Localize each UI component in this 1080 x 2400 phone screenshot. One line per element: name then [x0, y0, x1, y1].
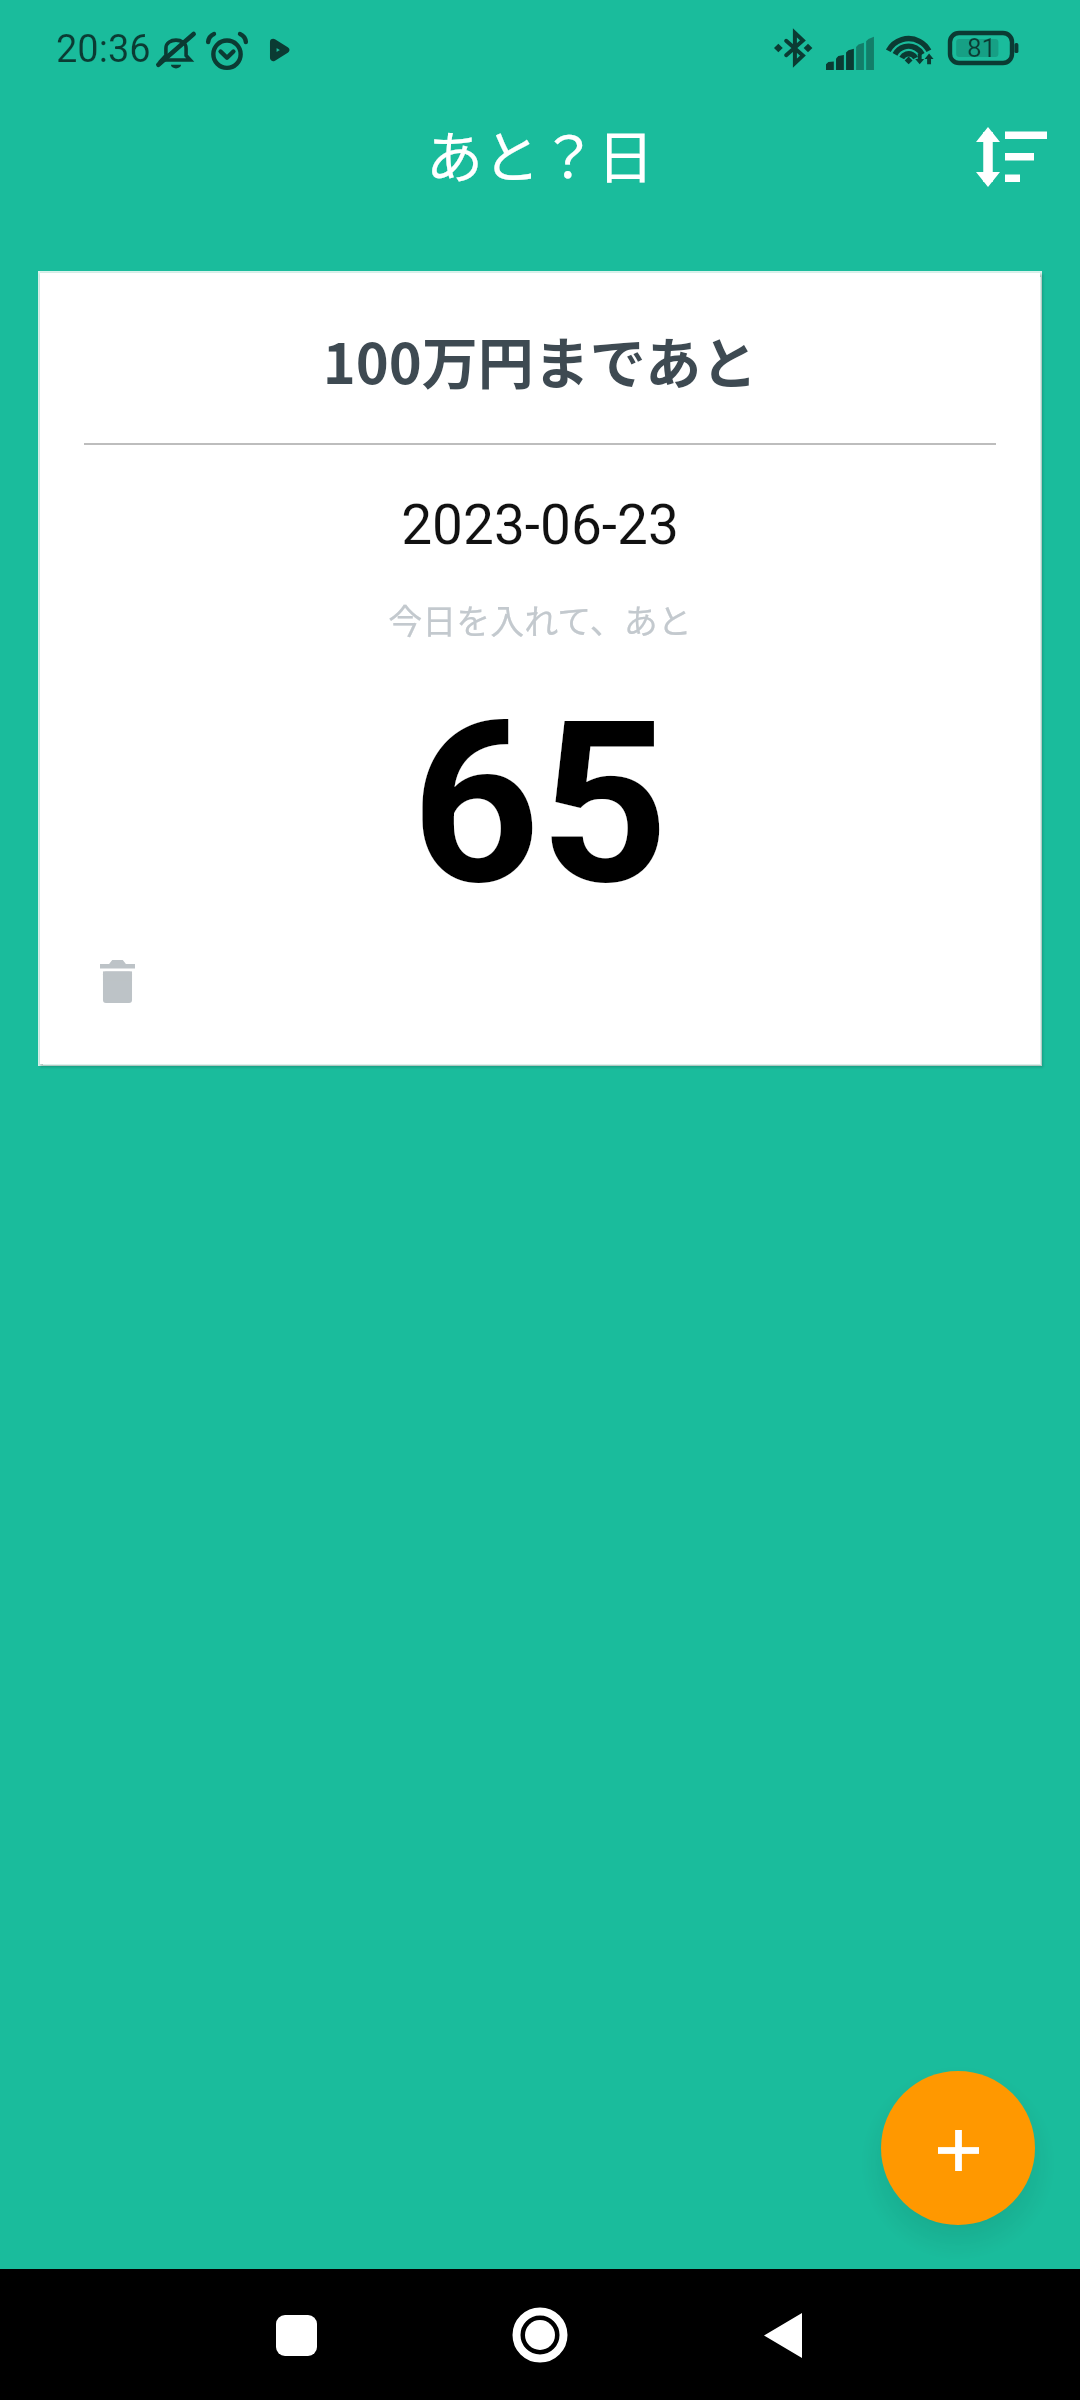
button[interactable]: 100万円まであと — [40, 273, 1040, 1064]
staticText: 65 — [40, 673, 1040, 936]
button[interactable]: Home — [480, 2275, 600, 2395]
button[interactable]: Recents — [236, 2275, 356, 2395]
button[interactable]: Add — [881, 2071, 1035, 2225]
staticText: 今日を入れて、あと — [40, 595, 1040, 644]
staticText: 2023-06-23 — [40, 493, 1040, 557]
button[interactable]: Back — [723, 2275, 843, 2395]
staticText: あと？日 — [426, 112, 654, 195]
staticText: 81 — [967, 33, 997, 63]
staticText: 20:36 — [56, 27, 151, 72]
button[interactable]: Sort — [958, 103, 1066, 211]
button[interactable]: Delete — [86, 950, 148, 1012]
staticText: 100万円まであと — [40, 319, 1040, 400]
